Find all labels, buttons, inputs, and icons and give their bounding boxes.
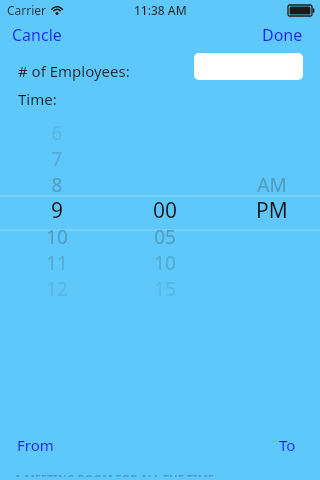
staticText: Time:: [18, 89, 57, 109]
button[interactable]: To: [279, 435, 296, 455]
staticText: 05: [130, 224, 200, 250]
staticText: 11:38 AM: [134, 2, 187, 18]
staticText: A MEETING ROOM FOR ALL THE TIME: [14, 474, 214, 477]
staticText: From: [17, 435, 54, 455]
staticText: 9: [22, 196, 92, 225]
staticText: # of Employees:: [18, 61, 130, 81]
staticText: Cancle: [12, 24, 62, 46]
staticText: 12: [22, 276, 92, 302]
button[interactable]: Done: [262, 24, 303, 46]
staticText: PM: [237, 196, 307, 225]
staticText: 8: [22, 172, 92, 198]
staticText: 10: [22, 224, 92, 250]
staticText: To: [279, 435, 296, 455]
staticText: 6: [22, 120, 92, 146]
button[interactable]: From: [17, 435, 54, 455]
staticText: 7: [22, 146, 92, 172]
staticText: 11: [22, 250, 92, 276]
staticText: AM: [237, 172, 307, 198]
staticText: 15: [130, 276, 200, 302]
staticText: 10: [130, 250, 200, 276]
button[interactable]: Time picker: [0, 112, 320, 302]
button[interactable]: Cancle: [12, 24, 62, 46]
staticText: Done: [262, 24, 303, 46]
staticText: Carrier: [7, 2, 47, 18]
button[interactable]: Number of employees input: [194, 53, 303, 80]
staticText: 00: [130, 196, 200, 225]
